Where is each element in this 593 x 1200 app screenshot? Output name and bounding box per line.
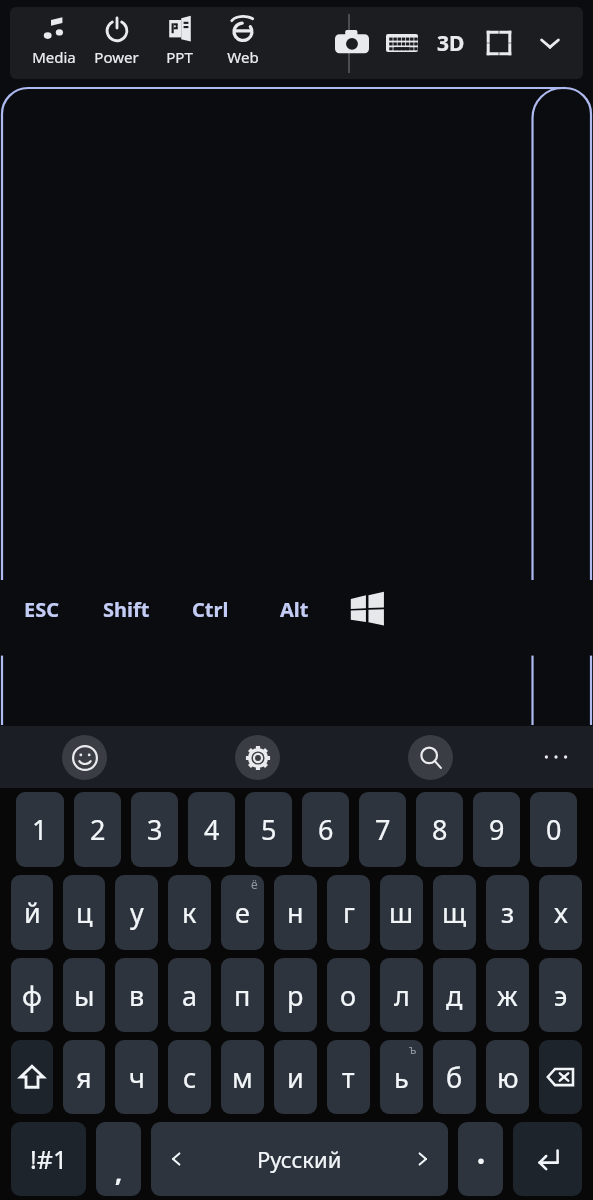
- button[interactable]: ц: [63, 875, 105, 950]
- staticText: ю: [497, 1059, 519, 1096]
- button[interactable]: Enter: [513, 1122, 582, 1196]
- button[interactable]: Alt: [252, 581, 336, 637]
- button[interactable]: 3D view: [433, 25, 469, 61]
- staticText: ж: [497, 977, 518, 1014]
- staticText: у: [130, 894, 144, 931]
- staticText: ё: [251, 876, 258, 892]
- button[interactable]: Settings: [235, 735, 280, 780]
- staticText: 8: [432, 811, 448, 848]
- button[interactable]: ч: [115, 1040, 158, 1114]
- staticText: 3: [147, 811, 163, 848]
- button[interactable]: щ: [433, 875, 476, 950]
- button[interactable]: 2: [74, 792, 121, 867]
- button[interactable]: 6: [302, 792, 349, 867]
- button[interactable]: Shift: [11, 1040, 53, 1114]
- button[interactable]: PPT: [148, 7, 211, 79]
- button[interactable]: и: [274, 1040, 317, 1114]
- staticText: д: [446, 977, 463, 1014]
- button[interactable]: 3: [131, 792, 178, 867]
- button[interactable]: Collapse: [531, 24, 569, 62]
- button[interactable]: 1: [16, 792, 64, 867]
- button[interactable]: ф: [11, 958, 53, 1032]
- button[interactable]: Media: [22, 7, 85, 79]
- button[interactable]: н: [274, 875, 317, 950]
- button[interactable]: Keyboard: [383, 24, 421, 62]
- staticText: ц: [76, 894, 93, 931]
- staticText: и: [287, 1059, 304, 1096]
- button[interactable]: 5: [245, 792, 292, 867]
- button[interactable]: ю: [486, 1040, 529, 1114]
- staticText: л: [394, 977, 410, 1014]
- button[interactable]: з: [486, 875, 529, 950]
- button[interactable]: ,: [96, 1122, 141, 1196]
- button[interactable]: п: [221, 958, 264, 1032]
- button[interactable]: э: [539, 958, 582, 1032]
- staticText: з: [501, 894, 515, 931]
- button[interactable]: ESC: [0, 581, 84, 637]
- button[interactable]: !#1: [11, 1122, 86, 1196]
- button[interactable]: Search: [408, 735, 453, 780]
- button[interactable]: б: [433, 1040, 476, 1114]
- staticText: м: [232, 1059, 253, 1096]
- button[interactable]: Space, Russian layout: [151, 1122, 448, 1196]
- button[interactable]: д: [433, 958, 476, 1032]
- button[interactable]: Shift: [84, 581, 168, 637]
- button[interactable]: я: [63, 1040, 105, 1114]
- button[interactable]: 7: [359, 792, 406, 867]
- button[interactable]: Emoji: [62, 735, 107, 780]
- staticText: н: [287, 894, 304, 931]
- button[interactable]: Backspace: [539, 1040, 582, 1114]
- button[interactable]: о: [327, 958, 370, 1032]
- button[interactable]: ы: [63, 958, 105, 1032]
- button[interactable]: ж: [486, 958, 529, 1032]
- staticText: ESC: [24, 596, 60, 623]
- button[interactable]: у: [115, 875, 158, 950]
- button[interactable]: Web: [211, 7, 274, 79]
- staticText: с: [183, 1059, 197, 1096]
- button[interactable]: р: [274, 958, 317, 1032]
- staticText: в: [129, 977, 145, 1014]
- staticText: Ctrl: [192, 596, 229, 623]
- staticText: ч: [129, 1059, 145, 1096]
- button[interactable]: 0: [530, 792, 577, 867]
- button[interactable]: [458, 1122, 503, 1196]
- staticText: 3D: [437, 29, 465, 58]
- staticText: о: [340, 977, 357, 1014]
- button[interactable]: е: [221, 875, 264, 950]
- button[interactable]: Ctrl: [168, 581, 252, 637]
- button[interactable]: Windows key: [336, 581, 398, 637]
- button[interactable]: 8: [416, 792, 463, 867]
- staticText: е: [235, 894, 250, 931]
- staticText: б: [446, 1059, 463, 1096]
- button[interactable]: 4: [188, 792, 235, 867]
- staticText: й: [24, 894, 41, 931]
- staticText: ь: [394, 1059, 409, 1096]
- button[interactable]: с: [168, 1040, 211, 1114]
- button[interactable]: Screenshot: [333, 24, 371, 62]
- staticText: а: [182, 977, 198, 1014]
- button[interactable]: й: [11, 875, 53, 950]
- button[interactable]: а: [168, 958, 211, 1032]
- staticText: ы: [74, 977, 95, 1014]
- button[interactable]: More options: [533, 734, 579, 780]
- button[interactable]: х: [539, 875, 582, 950]
- button[interactable]: Fullscreen: [480, 24, 518, 62]
- button[interactable]: ь: [380, 1040, 423, 1114]
- staticText: щ: [442, 894, 467, 931]
- button[interactable]: м: [221, 1040, 264, 1114]
- button[interactable]: г: [327, 875, 370, 950]
- staticText: Shift: [103, 596, 150, 623]
- staticText: PPT: [166, 47, 193, 67]
- button[interactable]: к: [168, 875, 211, 950]
- button[interactable]: т: [327, 1040, 370, 1114]
- button[interactable]: л: [380, 958, 423, 1032]
- staticText: Media: [32, 47, 76, 67]
- button[interactable]: 9: [473, 792, 520, 867]
- button[interactable]: ш: [380, 875, 423, 950]
- staticText: т: [342, 1059, 355, 1096]
- button[interactable]: в: [115, 958, 158, 1032]
- staticText: х: [554, 894, 568, 931]
- button[interactable]: Power: [85, 7, 148, 79]
- staticText: 6: [318, 811, 334, 848]
- staticText: Alt: [280, 596, 309, 623]
